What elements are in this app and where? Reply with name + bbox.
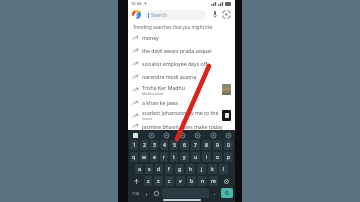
button[interactable]: s (145, 164, 153, 174)
staticText: 8 (205, 142, 208, 149)
staticText: i (206, 154, 208, 161)
button[interactable]: Shift (130, 176, 142, 186)
staticText: 6 (183, 142, 186, 149)
staticText: 7 (194, 142, 197, 149)
button[interactable]: z (144, 176, 152, 186)
button[interactable]: Theme (193, 131, 201, 139)
staticText: 5 (173, 142, 176, 149)
button[interactable]: Emoji (152, 188, 160, 198)
staticText: t (173, 154, 175, 161)
button[interactable]: v (176, 176, 185, 186)
button[interactable]: jasmine bhasin vibes make today (128, 122, 235, 130)
staticText: f (168, 166, 170, 173)
staticText: o (216, 154, 220, 161)
button[interactable]: Backspace (220, 176, 233, 186)
staticText: z (147, 178, 150, 185)
button[interactable]: Period (211, 188, 219, 198)
button[interactable]: p (224, 152, 233, 162)
staticText: b (190, 178, 194, 185)
staticText: h (189, 166, 193, 173)
button[interactable]: i (202, 152, 211, 162)
staticText: k (211, 166, 214, 173)
button[interactable]: money (128, 31, 235, 44)
staticText: 0 (227, 142, 230, 149)
button[interactable]: socialist employee days off (128, 57, 235, 70)
button[interactable]: y (180, 152, 189, 162)
button[interactable]: d (155, 164, 163, 174)
staticText: socialist employee days off (142, 60, 208, 67)
button[interactable]: Sticker (178, 131, 186, 139)
button[interactable]: narendra modi austria (128, 70, 235, 83)
button[interactable]: 5 (170, 140, 178, 150)
button[interactable]: 9 (213, 140, 222, 150)
staticText: q (132, 154, 136, 161)
staticText: w (142, 154, 146, 161)
button[interactable]: Search (145, 10, 206, 20)
button[interactable]: 6 (180, 140, 189, 150)
button[interactable]: Voice search (209, 9, 220, 20)
staticText: l (223, 166, 225, 173)
staticText: 3 (153, 142, 156, 149)
staticText: c (168, 178, 171, 185)
button[interactable]: c (165, 176, 174, 186)
button[interactable]: the devil wears prada sequel (128, 44, 235, 57)
staticText: money (142, 34, 159, 41)
button[interactable]: e (150, 152, 158, 162)
button[interactable]: Clipboard (131, 131, 139, 139)
button[interactable]: n (198, 176, 207, 186)
staticText: j (201, 166, 203, 173)
staticText: x (157, 178, 160, 185)
staticText: ?123 (132, 191, 140, 196)
button[interactable]: 3 (150, 140, 158, 150)
button[interactable]: scarlett johansson fly me to the (128, 109, 235, 122)
button[interactable]: Translate (209, 131, 217, 139)
button[interactable]: Symbols (130, 188, 141, 198)
button[interactable]: Search (221, 188, 233, 198)
button[interactable]: 7 (191, 140, 200, 150)
staticText: v (179, 178, 182, 185)
button[interactable]: Google Lens (221, 9, 232, 20)
staticText: u (194, 154, 198, 161)
button[interactable]: Google (131, 9, 142, 20)
staticText: , (146, 190, 148, 197)
button[interactable]: u (191, 152, 200, 162)
staticText: d (157, 166, 161, 173)
button[interactable]: 1 (130, 140, 138, 150)
staticText: Trisha Ker Madhu (142, 84, 185, 91)
button[interactable]: Voice (224, 131, 232, 139)
button[interactable]: q (130, 152, 138, 162)
button[interactable]: Settings (162, 131, 170, 139)
staticText: m (211, 178, 216, 185)
button[interactable]: f (165, 164, 173, 174)
button[interactable]: 4 (160, 140, 168, 150)
staticText: n (201, 178, 205, 185)
button[interactable]: t (170, 152, 178, 162)
button[interactable]: r (160, 152, 168, 162)
button[interactable]: o (213, 152, 222, 162)
button[interactable]: a khan ke jawa (128, 96, 235, 109)
button[interactable]: h (186, 164, 195, 174)
staticText: r (163, 154, 166, 161)
button[interactable]: j (197, 164, 206, 174)
button[interactable]: b (187, 176, 196, 186)
button[interactable]: m (209, 176, 218, 186)
button[interactable]: g (175, 164, 184, 174)
staticText: e (153, 154, 156, 161)
button[interactable]: w (140, 152, 148, 162)
button[interactable]: k (208, 164, 217, 174)
button[interactable]: 2 (140, 140, 148, 150)
staticText: 1 (133, 142, 136, 149)
button[interactable]: Trisha Ker Madhu (128, 83, 235, 96)
staticText: narendra modi austria (142, 73, 197, 80)
staticText: 4 (163, 142, 166, 149)
staticText: 2 (143, 142, 146, 149)
button[interactable]: 0 (224, 140, 233, 150)
button[interactable]: GIF (147, 131, 155, 139)
button[interactable]: Comma (143, 188, 150, 198)
button[interactable]: x (154, 176, 163, 186)
button[interactable]: 8 (202, 140, 211, 150)
button[interactable]: a (135, 164, 143, 174)
button[interactable]: l (219, 164, 228, 174)
staticText: Fly Me to the Moon 2024 film (142, 121, 189, 122)
